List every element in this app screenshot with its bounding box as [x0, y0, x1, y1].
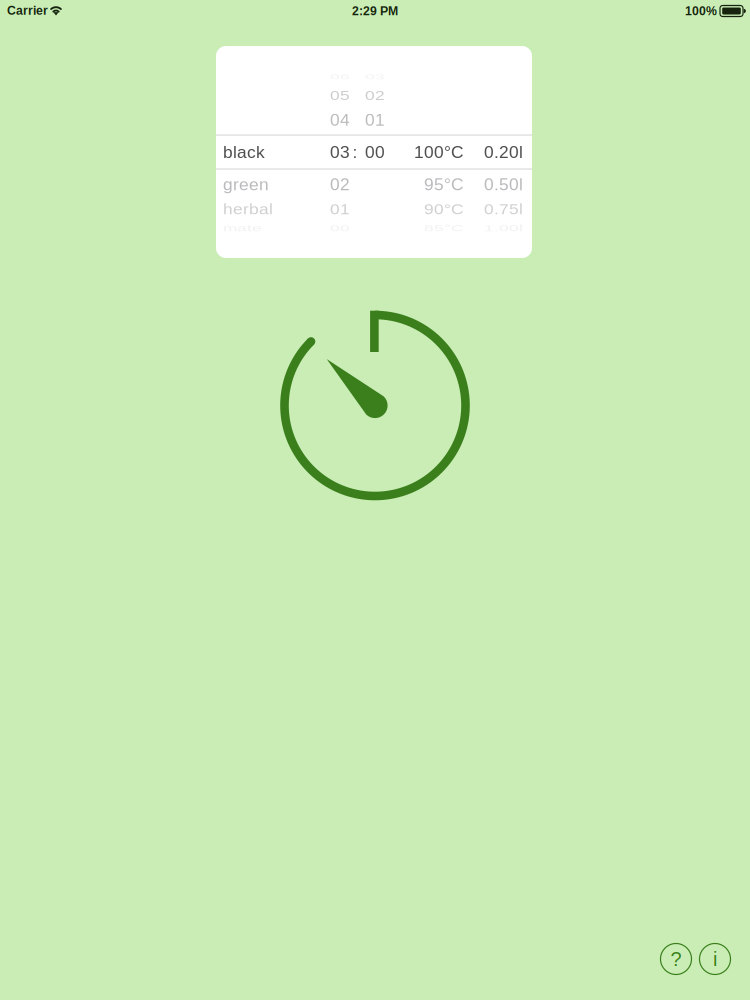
staticText: 00 [330, 218, 350, 238]
staticText: 100°C [414, 142, 464, 162]
staticText: 02 [365, 85, 385, 105]
staticText: 1.00l [484, 218, 523, 238]
staticText: 0.50l [484, 175, 523, 194]
button[interactable]: Start timer [275, 305, 475, 505]
staticText: 05 [330, 85, 350, 105]
staticText: 2:29 PM [352, 4, 398, 18]
staticText: : [352, 142, 357, 162]
staticText: 90°C [424, 200, 464, 219]
staticText: 85°C [424, 218, 464, 238]
staticText: green [223, 175, 269, 194]
staticText: 03 [330, 142, 350, 162]
staticText: 02 [330, 175, 350, 194]
staticText: ? [670, 948, 681, 970]
staticText: 0.75l [484, 200, 523, 219]
staticText: 01 [330, 200, 350, 219]
staticText: 00 [365, 142, 385, 162]
staticText: Carrier [7, 4, 48, 17]
staticText: mate [223, 218, 262, 238]
staticText: 01 [365, 110, 385, 130]
button[interactable]: Help [660, 943, 691, 974]
button[interactable]: Brew settings: black, 3 minutes, 100 deg… [216, 46, 532, 258]
staticText: black [223, 142, 265, 162]
staticText: 100% [685, 4, 717, 18]
staticText: 95°C [424, 175, 464, 194]
staticText: i [713, 948, 717, 970]
staticText: herbal [223, 200, 273, 219]
button[interactable]: Info [699, 943, 730, 974]
staticText: 0.20l [484, 142, 523, 162]
staticText: 04 [330, 110, 350, 130]
